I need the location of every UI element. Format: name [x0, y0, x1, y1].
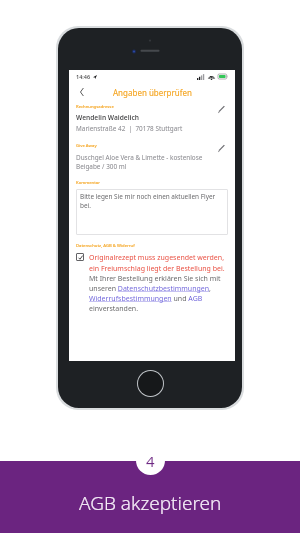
staticText: Wendelin Waidelich	[76, 113, 139, 122]
staticText: Datenschutz, AGB & Widerruf	[76, 243, 135, 249]
staticText: Rechnungsadresse	[76, 104, 114, 110]
staticText: 14:46	[76, 73, 91, 80]
staticText: AGB akzeptieren	[79, 490, 222, 516]
button[interactable]: Give Away	[76, 143, 228, 171]
button[interactable]: Bearbeiten	[214, 102, 228, 116]
staticText: Duschgel Aloe Vera & Limette - kostenlos…	[76, 153, 214, 171]
staticText: Bitte legen Sie mir noch einen aktuellen…	[80, 192, 224, 210]
staticText: Originalrezept muss zugesendet werden, e…	[89, 253, 228, 313]
button[interactable]: Home	[138, 371, 163, 396]
button[interactable]: Bearbeiten	[214, 141, 228, 155]
button[interactable]: Bitte legen Sie mir noch einen aktuellen…	[76, 189, 228, 235]
staticText: 4	[146, 451, 155, 471]
button[interactable]: Rechnungsadresse	[76, 104, 228, 133]
staticText: Kommentar	[76, 180, 100, 186]
staticText: Marienstraße 42 | 70178 Stuttgart	[76, 124, 183, 133]
button[interactable]: Zurück	[76, 86, 88, 98]
staticText: Give Away	[76, 143, 97, 149]
staticText: Angaben überprüfen	[113, 87, 192, 98]
button[interactable]: Originalrezept muss zugesendet werden, e…	[76, 253, 228, 313]
